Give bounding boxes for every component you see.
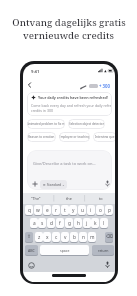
button[interactable]: x <box>43 232 51 243</box>
staticText: 9:41 <box>31 69 40 75</box>
staticText: space <box>60 248 70 253</box>
staticText: k <box>94 220 97 227</box>
staticText: e <box>46 207 49 214</box>
staticText: t <box>64 207 66 214</box>
button[interactable]: n <box>79 232 87 243</box>
button[interactable]: l <box>100 218 108 229</box>
button[interactable]: Reason to creation <box>27 132 56 142</box>
button[interactable]: q <box>25 205 33 216</box>
button[interactable]: return <box>92 245 114 256</box>
staticText: ≡ Standard ⌄ <box>43 182 65 187</box>
button[interactable]: Employee or teaching plan <box>59 132 90 142</box>
staticText: w <box>36 207 40 214</box>
staticText: x <box>46 234 49 241</box>
button[interactable]: ≡ Standard ⌄ <box>40 180 67 189</box>
staticText: z <box>38 234 41 241</box>
button[interactable]: w <box>34 205 42 216</box>
button[interactable]: d <box>47 218 55 229</box>
button[interactable]: space <box>40 245 89 256</box>
staticText: f <box>59 220 61 227</box>
button[interactable]: Animated problem to fix me <box>27 119 65 129</box>
button[interactable]: z <box>35 232 43 243</box>
staticText: ⌫ <box>106 234 113 240</box>
staticText: Reason to creation <box>28 135 55 139</box>
staticText: Your daily credits have been refreshed! <box>38 95 108 100</box>
button[interactable]: ⌫ <box>105 232 113 243</box>
staticText: Employee or teaching plan <box>59 135 90 139</box>
staticText: return <box>98 248 109 253</box>
button[interactable]: r <box>52 205 60 216</box>
staticText: + 300 <box>99 83 110 89</box>
button[interactable]: s <box>38 218 46 229</box>
staticText: the <box>66 196 72 201</box>
button[interactable]: Give/Describe a task to work on... <box>27 150 112 190</box>
staticText: Selection object detector <box>69 122 104 126</box>
button[interactable]: Selection object detector <box>68 119 105 129</box>
staticText: to <box>99 196 103 201</box>
staticText: Animated problem to fix me <box>27 122 65 126</box>
staticText: d <box>50 220 53 227</box>
staticText: h <box>77 220 80 227</box>
button[interactable]: j <box>83 218 91 229</box>
button[interactable]: c <box>52 232 60 243</box>
button[interactable]: + 300 <box>99 83 110 89</box>
button[interactable]: ⇧ <box>25 232 33 243</box>
staticText: “The” <box>31 196 41 201</box>
staticText: o <box>99 207 102 214</box>
staticText: p <box>108 207 111 214</box>
staticText: b <box>73 234 76 241</box>
button[interactable]: v <box>61 232 69 243</box>
staticText: ABC <box>28 248 35 253</box>
button[interactable]: h <box>74 218 82 229</box>
staticText: ⇧ <box>27 234 32 240</box>
staticText: r <box>55 207 57 214</box>
staticText: vernieuwde credits <box>23 29 114 42</box>
button[interactable]: Interview que <box>93 132 115 142</box>
staticText: q <box>28 207 31 214</box>
staticText: m <box>90 234 95 241</box>
button[interactable]: o <box>96 205 104 216</box>
button[interactable]: f <box>56 218 64 229</box>
button[interactable]: e <box>43 205 51 216</box>
button[interactable]: m <box>88 232 96 243</box>
button[interactable]: a <box>30 218 38 229</box>
staticText: s <box>41 220 44 227</box>
staticText: Come back every day and refresh your dai… <box>31 103 112 108</box>
staticText: j <box>86 220 88 227</box>
staticText: Interview que <box>95 135 115 139</box>
staticText: credits in 300 <box>31 108 53 113</box>
button[interactable]: k <box>91 218 99 229</box>
staticText: c <box>55 234 58 241</box>
button[interactable]: ABC <box>25 245 38 256</box>
staticText: y <box>72 207 75 214</box>
staticText: Give/Describe a task to work on... <box>33 161 96 166</box>
button[interactable]: g <box>65 218 73 229</box>
button[interactable]: p <box>105 205 113 216</box>
button[interactable]: y <box>69 205 77 216</box>
staticText: l <box>103 220 105 227</box>
button[interactable] <box>26 81 34 89</box>
button[interactable]: u <box>78 205 86 216</box>
staticText: g <box>68 220 71 227</box>
button[interactable]: t <box>61 205 69 216</box>
staticText: n <box>82 234 85 241</box>
button[interactable]: i <box>87 205 95 216</box>
staticText: u <box>81 207 84 214</box>
button[interactable]: Your daily credits have been refreshed! <box>27 92 112 116</box>
staticText: Ontvang dagelijks gratis <box>12 16 126 29</box>
button[interactable]: b <box>70 232 78 243</box>
staticText: i <box>90 207 92 214</box>
staticText: a <box>33 220 36 227</box>
staticText: v <box>64 234 67 241</box>
